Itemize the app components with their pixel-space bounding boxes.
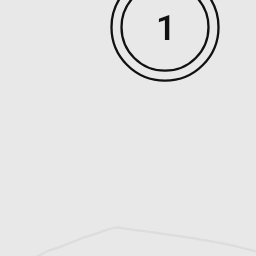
staticText: 1 [156, 8, 176, 49]
button[interactable]: Step goal progress [125, 0, 207, 69]
